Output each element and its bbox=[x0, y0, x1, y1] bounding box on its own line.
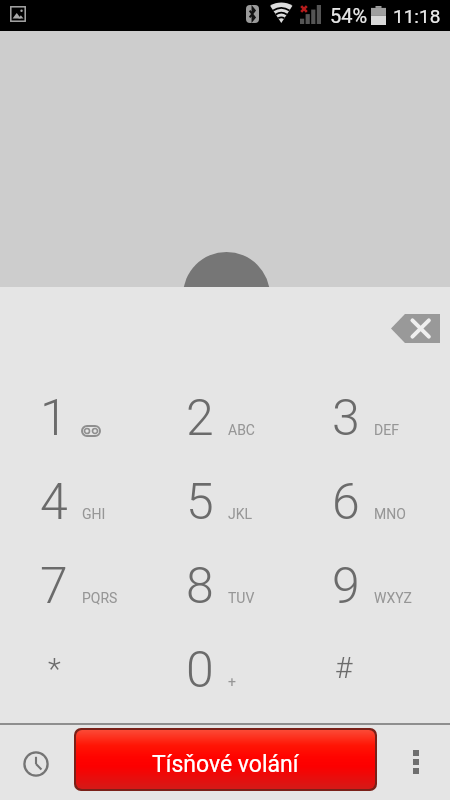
staticText: JKL bbox=[228, 506, 253, 522]
staticText: PQRS bbox=[82, 590, 118, 606]
staticText: 9 bbox=[332, 557, 360, 616]
button[interactable]: 6 bbox=[332, 460, 450, 544]
staticText: 11:18 bbox=[393, 5, 441, 27]
button[interactable]: 5 bbox=[186, 460, 332, 544]
staticText: 5 bbox=[186, 473, 214, 532]
staticText: 8 bbox=[186, 557, 214, 616]
button[interactable]: Call log bbox=[0, 722, 74, 800]
button[interactable]: More options bbox=[377, 722, 450, 800]
staticText: # bbox=[335, 650, 353, 685]
staticText: 4 bbox=[40, 473, 68, 532]
button[interactable]: * bbox=[40, 628, 186, 712]
staticText: 1 bbox=[40, 389, 68, 448]
staticText: MNO bbox=[374, 506, 406, 522]
button[interactable]: Backspace bbox=[380, 300, 450, 356]
staticText: 3 bbox=[332, 389, 360, 448]
staticText: 0 bbox=[186, 641, 214, 700]
staticText: * bbox=[48, 651, 61, 686]
button[interactable]: 8 bbox=[186, 544, 332, 628]
staticText: + bbox=[228, 674, 236, 690]
button[interactable]: 1 bbox=[40, 376, 186, 460]
staticText: GHI bbox=[82, 506, 106, 522]
button[interactable]: 7 bbox=[40, 544, 186, 628]
staticText: 7 bbox=[40, 557, 68, 616]
button[interactable]: Tísňové volání bbox=[76, 730, 375, 789]
staticText: DEF bbox=[374, 422, 399, 438]
staticText: ABC bbox=[228, 422, 255, 438]
button[interactable]: 4 bbox=[40, 460, 186, 544]
staticText: WXYZ bbox=[374, 590, 412, 606]
staticText: 2 bbox=[186, 389, 214, 448]
button[interactable]: # bbox=[332, 628, 450, 712]
staticText: 6 bbox=[332, 473, 360, 532]
button[interactable]: 2 bbox=[186, 376, 332, 460]
staticText: Tísňové volání bbox=[152, 751, 299, 778]
button[interactable]: 3 bbox=[332, 376, 450, 460]
staticText: 54% bbox=[330, 4, 368, 27]
button[interactable]: 0 bbox=[186, 628, 332, 712]
button[interactable]: 9 bbox=[332, 544, 450, 628]
staticText: TUV bbox=[228, 590, 255, 606]
